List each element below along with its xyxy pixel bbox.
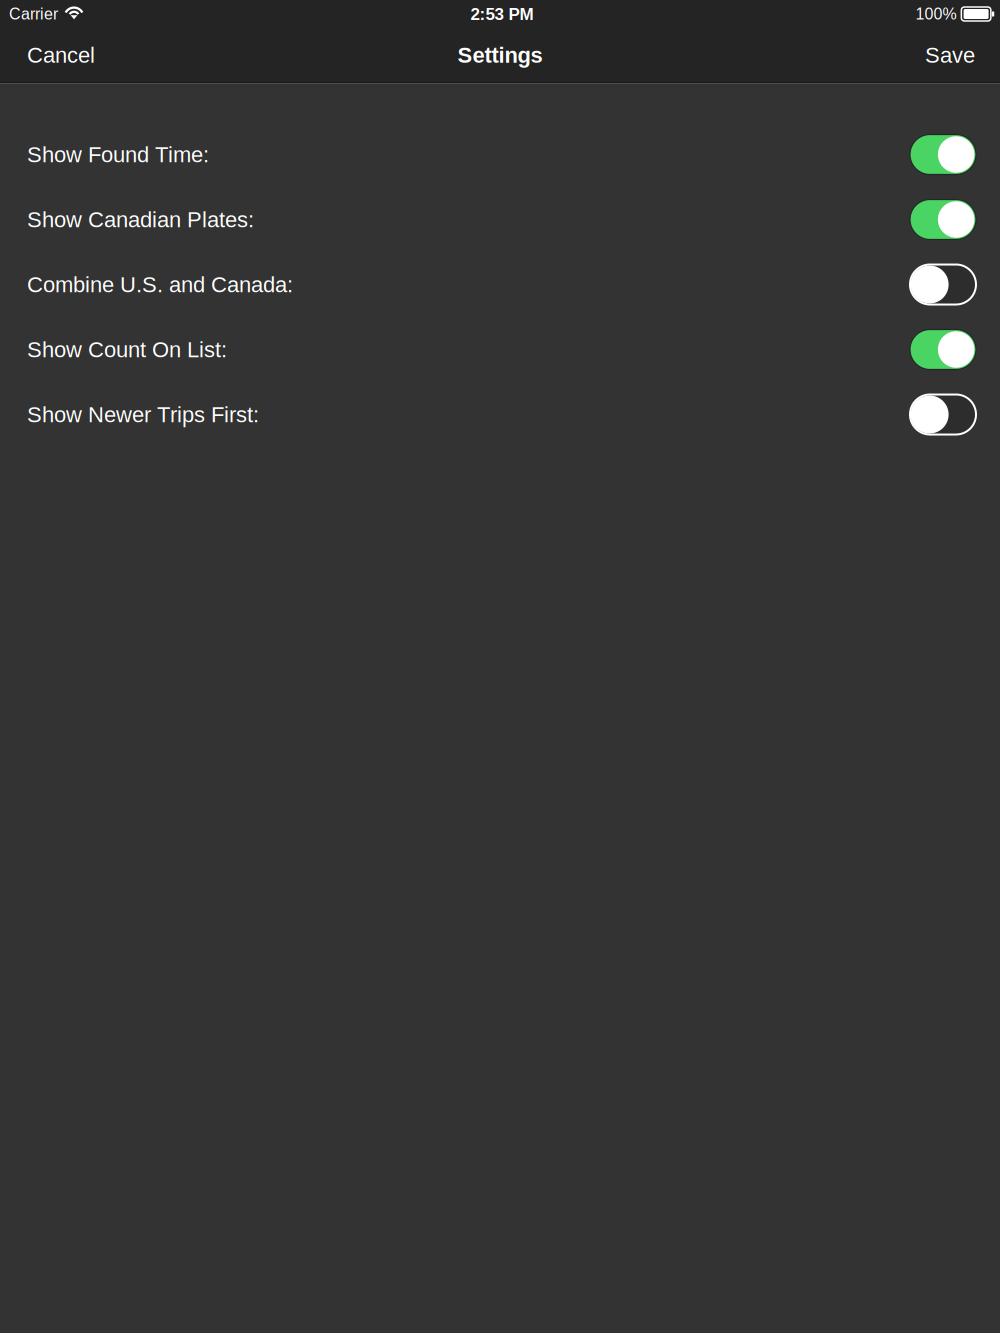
- staticText: Show Found Time:: [27, 142, 209, 167]
- staticText: Settings: [457, 43, 542, 67]
- button[interactable]: 1: [0, 122, 1000, 187]
- staticText: Show Newer Trips First:: [27, 402, 259, 427]
- button[interactable]: 1: [0, 317, 1000, 382]
- staticText: Show Canadian Plates:: [27, 207, 254, 232]
- staticText: 100%: [916, 5, 957, 23]
- staticText: Show Count On List:: [27, 337, 227, 362]
- button[interactable]: 0: [0, 252, 1000, 317]
- staticText: Combine U.S. and Canada:: [27, 272, 293, 297]
- staticText: 2:53 PM: [470, 4, 533, 24]
- button[interactable]: 0: [0, 382, 1000, 447]
- button[interactable]: Save: [909, 27, 991, 82]
- staticText: Carrier: [9, 5, 58, 23]
- staticText: Cancel: [27, 43, 95, 67]
- button[interactable]: Cancel: [11, 27, 111, 82]
- staticText: Save: [925, 43, 975, 67]
- button[interactable]: 1: [0, 187, 1000, 252]
